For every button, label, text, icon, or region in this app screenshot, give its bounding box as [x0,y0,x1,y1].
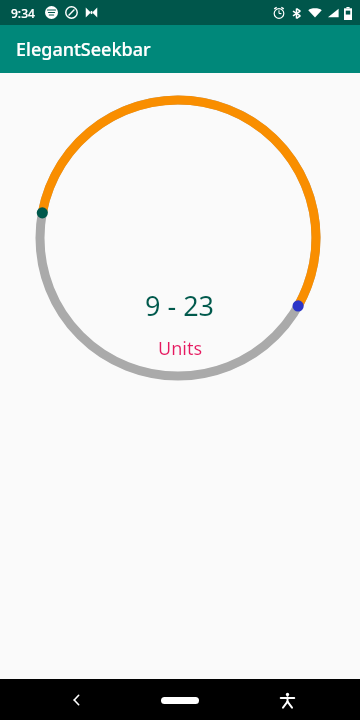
button[interactable]: Home [150,688,210,712]
staticText: 9 - 23 [145,287,215,324]
staticText: Units [158,336,203,361]
button[interactable]: Accessibility [270,683,304,717]
button[interactable]: Back [60,683,94,717]
staticText: ElegantSeekbar [16,37,151,62]
staticText: 9:34 [11,5,35,21]
button[interactable]: Range seekbar [0,73,360,679]
